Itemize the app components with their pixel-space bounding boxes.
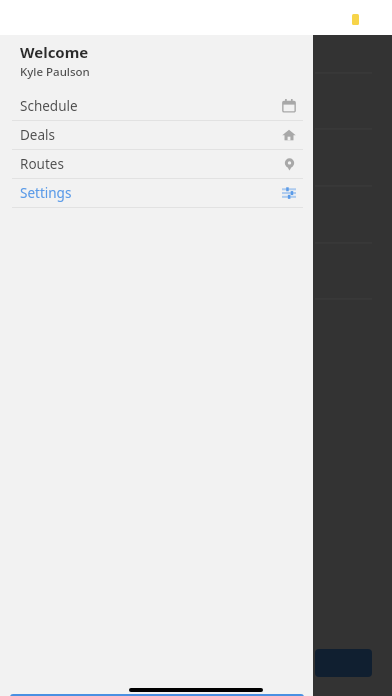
button[interactable]: Routes bbox=[0, 150, 313, 178]
staticText: Settings bbox=[20, 184, 281, 202]
button[interactable]: Logout bbox=[10, 694, 304, 696]
staticText: Routes bbox=[20, 155, 281, 173]
staticText: Kyle Paulson bbox=[20, 64, 90, 80]
staticText: Welcome bbox=[20, 42, 89, 62]
staticText: Deals bbox=[20, 126, 281, 144]
button[interactable]: Deals bbox=[0, 121, 313, 149]
button[interactable]: Schedule bbox=[0, 92, 313, 120]
staticText: Schedule bbox=[20, 97, 281, 115]
button[interactable]: Settings bbox=[0, 179, 313, 207]
